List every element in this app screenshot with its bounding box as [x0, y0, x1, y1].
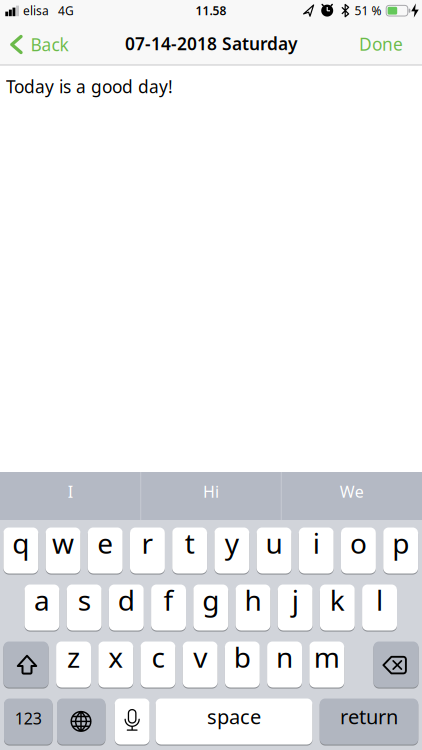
staticText: n [276, 638, 293, 675]
button[interactable]: z [56, 641, 91, 687]
staticText: l [376, 581, 383, 618]
staticText: i [313, 524, 320, 561]
staticText: g [202, 581, 219, 618]
staticText: o [350, 524, 367, 561]
button[interactable] [373, 641, 418, 687]
staticText: a [34, 581, 50, 618]
button[interactable]: q [3, 527, 38, 573]
button[interactable]: n [267, 641, 302, 687]
staticText: Hi [203, 481, 219, 502]
button[interactable]: Done [359, 32, 403, 55]
staticText: m [314, 638, 340, 675]
staticText: 4G [58, 2, 74, 18]
staticText: j [292, 581, 299, 618]
button[interactable]: I [0, 472, 140, 520]
button[interactable]: y [214, 527, 249, 573]
staticText: 123 [15, 708, 42, 729]
staticText: u [266, 524, 283, 561]
button[interactable]: 123 [4, 698, 52, 744]
staticText: 07-14-2018 Saturday [125, 32, 297, 55]
staticText: w [52, 524, 74, 561]
staticText: 11.58 [195, 2, 226, 18]
button[interactable]: r [130, 527, 165, 573]
staticText: elisa [23, 2, 49, 18]
button[interactable]: Hi [141, 472, 281, 520]
button[interactable]: a [24, 584, 59, 630]
button[interactable]: Back [0, 33, 68, 56]
staticText: f [164, 581, 174, 618]
staticText: Done [359, 32, 403, 55]
button[interactable]: x [98, 641, 133, 687]
button[interactable]: j [278, 584, 313, 630]
button[interactable]: t [172, 527, 207, 573]
staticText: space [207, 703, 261, 730]
staticText: e [97, 524, 113, 561]
button[interactable]: f [151, 584, 186, 630]
staticText: x [108, 638, 123, 675]
staticText: h [244, 581, 261, 618]
staticText: t [185, 524, 195, 561]
staticText: q [12, 524, 29, 561]
button[interactable] [57, 698, 105, 744]
button[interactable] [115, 698, 150, 744]
button[interactable]: g [193, 584, 228, 630]
button[interactable]: u [257, 527, 291, 573]
button[interactable]: h [235, 584, 270, 630]
staticText: y [225, 524, 239, 561]
button[interactable]: e [88, 527, 123, 573]
button[interactable]: return [320, 698, 418, 744]
staticText: d [118, 581, 135, 618]
staticText: I [68, 481, 73, 502]
button[interactable]: l [362, 584, 397, 630]
staticText: v [193, 638, 207, 675]
button[interactable]: p [383, 527, 418, 573]
button[interactable]: k [320, 584, 355, 630]
staticText: z [67, 638, 80, 675]
staticText: k [330, 581, 345, 618]
staticText: c [151, 638, 164, 675]
staticText: return [340, 703, 398, 730]
button[interactable]: space [156, 698, 312, 744]
button[interactable]: c [140, 641, 175, 687]
button[interactable]: d [109, 584, 144, 630]
staticText: r [141, 524, 153, 561]
button[interactable]: b [225, 641, 260, 687]
staticText: Today is a good day! [6, 75, 173, 98]
staticText: p [392, 524, 409, 561]
button[interactable]: i [299, 527, 334, 573]
staticText: We [340, 481, 364, 502]
button[interactable]: m [309, 641, 344, 687]
button[interactable]: s [67, 584, 102, 630]
button[interactable]: v [183, 641, 218, 687]
staticText: Back [30, 33, 68, 56]
button[interactable] [3, 641, 48, 687]
staticText: b [234, 638, 251, 675]
button[interactable]: We [282, 472, 422, 520]
button[interactable]: o [341, 527, 376, 573]
staticText: s [78, 581, 91, 618]
button[interactable]: w [46, 527, 80, 573]
staticText: 51 % [354, 2, 381, 18]
